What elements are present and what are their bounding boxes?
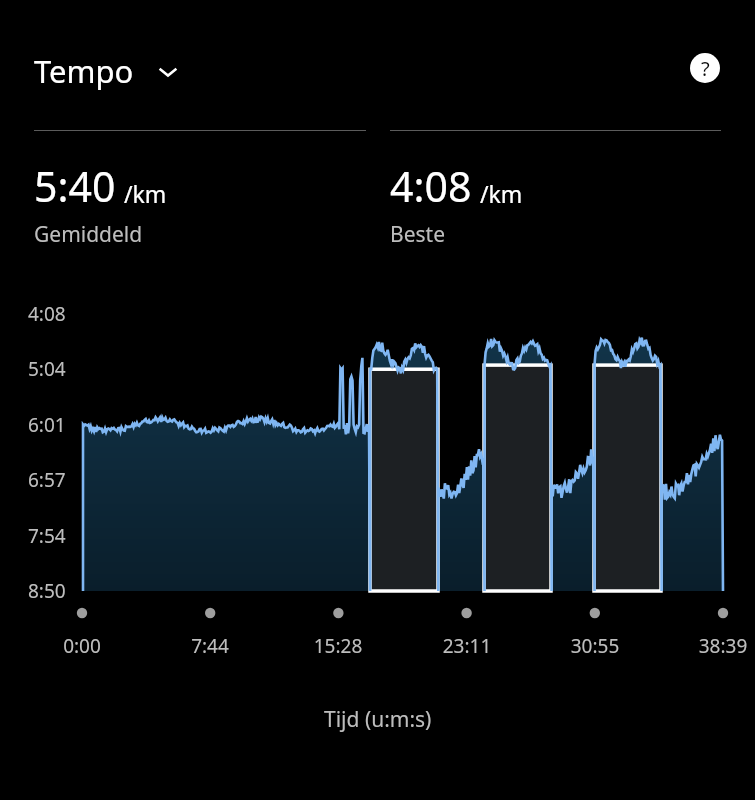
staticText: /km — [124, 178, 167, 209]
staticText: 6:57 — [28, 467, 84, 493]
staticText: 5:40 — [34, 158, 116, 214]
staticText: 5:04 — [28, 356, 84, 382]
staticText: 8:50 — [28, 578, 84, 604]
staticText: ? — [701, 55, 710, 82]
button[interactable]: Tempo — [34, 50, 182, 92]
staticText: Beste — [390, 220, 445, 249]
staticText: 15:28 — [300, 633, 376, 659]
button[interactable]: 5:40 — [34, 140, 334, 250]
staticText: Tijd (u:m:s) — [324, 705, 432, 734]
staticText: Gemiddeld — [34, 220, 143, 249]
staticText: 30:55 — [557, 633, 633, 659]
button[interactable]: 4:08 — [390, 140, 690, 250]
staticText: /km — [480, 178, 523, 209]
staticText: 4:08 — [28, 301, 84, 327]
staticText: 6:01 — [28, 412, 84, 438]
staticText: 7:54 — [28, 523, 84, 549]
staticText: 7:44 — [172, 633, 248, 659]
staticText: 23:11 — [429, 633, 505, 659]
staticText: 4:08 — [390, 158, 472, 214]
staticText: Tempo — [34, 50, 134, 92]
staticText: 38:39 — [685, 633, 755, 659]
staticText: 0:00 — [44, 633, 120, 659]
button[interactable]: Help — [690, 53, 720, 83]
